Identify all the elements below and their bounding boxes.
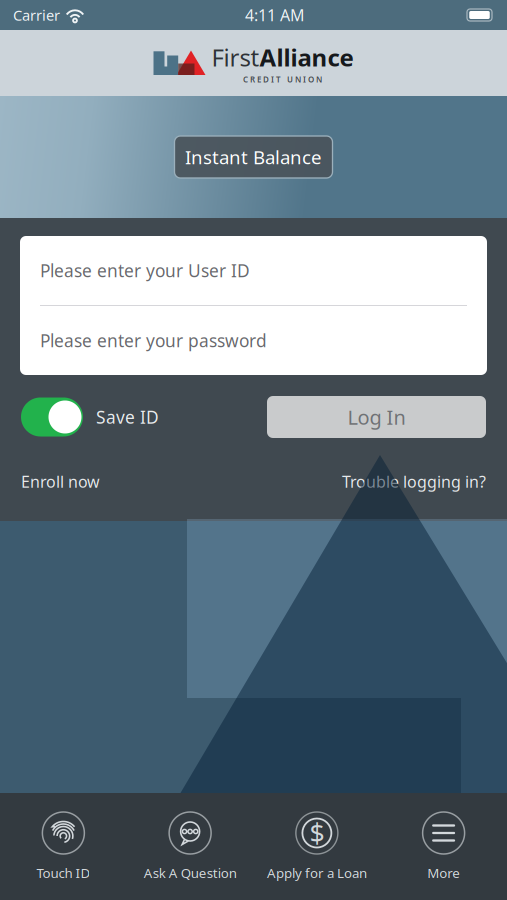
staticText: Log In xyxy=(347,404,405,430)
button[interactable]: Ask A Question xyxy=(127,793,254,900)
button[interactable]: Enroll now xyxy=(21,471,100,492)
staticText: First xyxy=(211,41,259,73)
button[interactable]: Touch ID xyxy=(0,793,127,900)
staticText: Carrier xyxy=(13,5,60,25)
staticText: $ xyxy=(309,815,324,851)
staticText: Alliance xyxy=(259,41,353,73)
staticText: C R E D I T U N I O N xyxy=(243,74,322,85)
staticText: Ask A Question xyxy=(144,864,237,882)
staticText: Please enter your password xyxy=(40,329,267,352)
staticText: Instant Balance xyxy=(185,145,322,169)
staticText: Apply for a Loan xyxy=(267,864,367,882)
button[interactable]: Instant Balance xyxy=(174,136,332,178)
staticText: Touch ID xyxy=(36,864,90,882)
staticText: Save ID xyxy=(96,405,159,428)
button[interactable]: Save ID xyxy=(21,397,159,436)
staticText: Trouble logging in? xyxy=(342,471,486,492)
staticText: Enroll now xyxy=(21,471,100,492)
button[interactable]: $ xyxy=(253,793,380,900)
staticText: More xyxy=(427,864,460,882)
staticText: Please enter your User ID xyxy=(40,259,250,282)
button[interactable]: Trouble logging in? xyxy=(342,471,486,492)
staticText: 4:11 AM xyxy=(245,4,305,26)
button[interactable]: More xyxy=(380,793,507,900)
button[interactable]: Log In xyxy=(267,396,486,438)
